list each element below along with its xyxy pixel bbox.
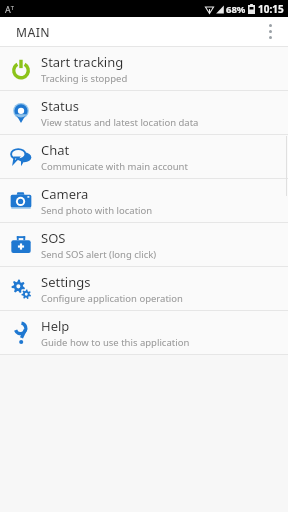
staticText: Aᵀ	[5, 3, 15, 15]
button[interactable]: Status	[0, 91, 288, 134]
staticText: Configure application operation	[41, 292, 183, 305]
staticText: Status	[41, 97, 80, 115]
staticText: Tracking is stopped	[41, 72, 128, 85]
staticText: 68%	[226, 3, 246, 16]
button[interactable]: Settings	[0, 267, 288, 310]
staticText: MAIN	[16, 24, 51, 40]
button[interactable]: SOS	[0, 223, 288, 266]
staticText: 10:15	[258, 2, 284, 16]
staticText: Guide how to use this application	[41, 336, 190, 349]
staticText: Send SOS alert (long click)	[41, 248, 157, 261]
staticText: Camera	[41, 185, 89, 203]
staticText: Start tracking	[41, 53, 124, 71]
staticText: Chat	[41, 141, 70, 159]
button[interactable]: Start tracking	[0, 47, 288, 90]
staticText: Communicate with main account	[41, 160, 188, 173]
staticText: Send photo with location	[41, 204, 153, 217]
button[interactable]: Help	[0, 311, 288, 354]
staticText: View status and latest location data	[41, 116, 199, 129]
button[interactable]: More options	[252, 17, 288, 46]
button[interactable]: Chat	[0, 135, 288, 178]
staticText: Help	[41, 317, 70, 335]
staticText: SOS	[41, 229, 66, 247]
staticText: Settings	[41, 273, 91, 291]
button[interactable]: Camera	[0, 179, 288, 222]
